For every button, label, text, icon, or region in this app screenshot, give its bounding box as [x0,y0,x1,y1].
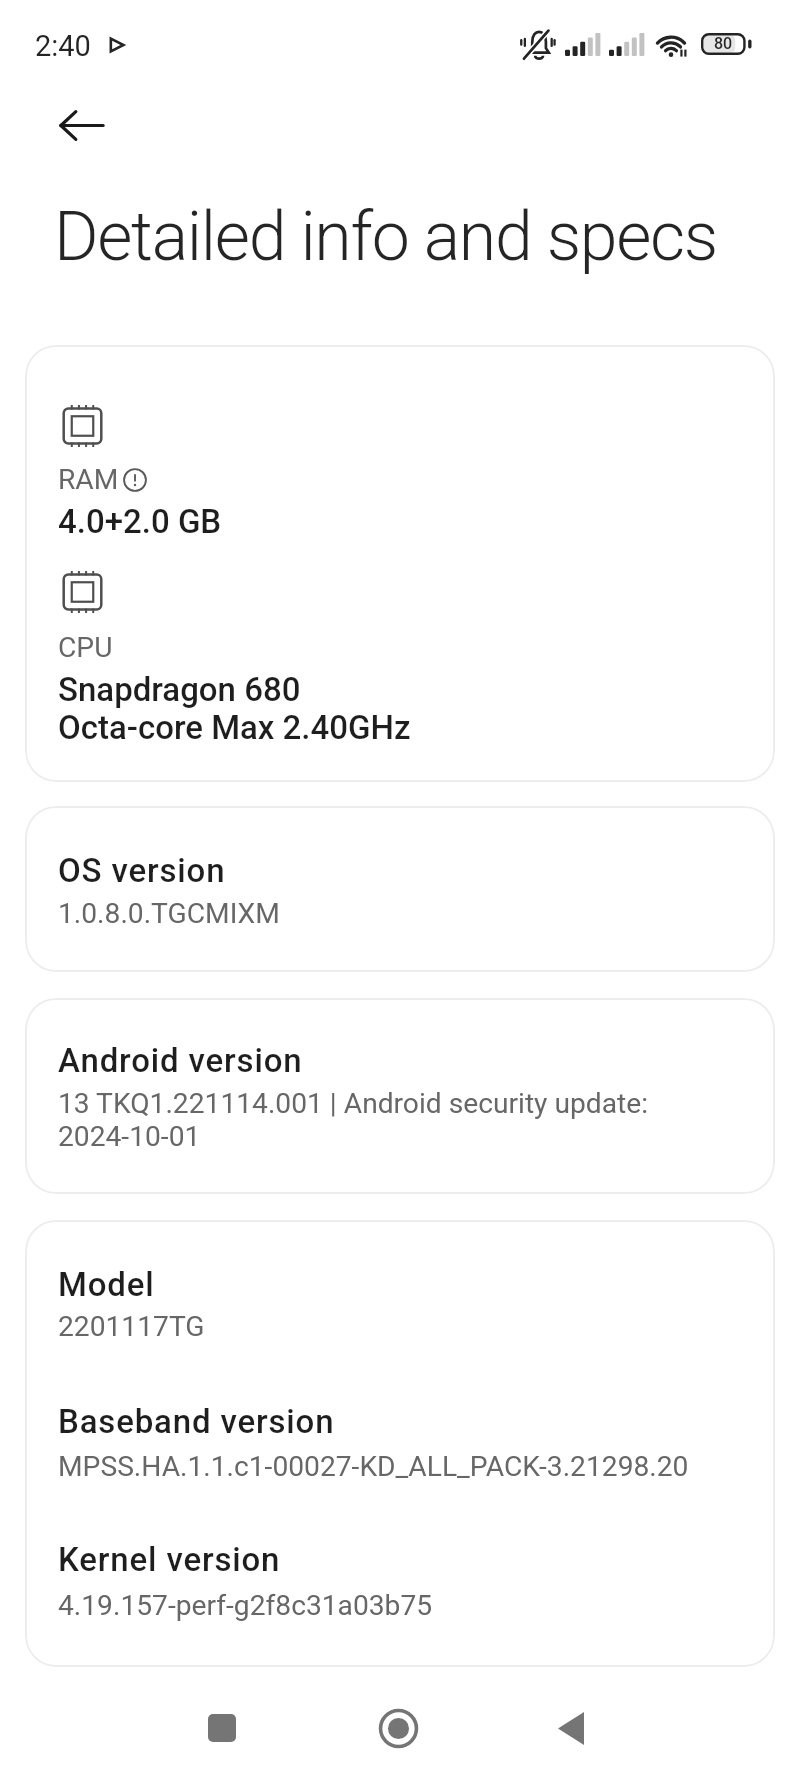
staticText: Android version [58,1042,303,1080]
staticText: Kernel version [58,1541,281,1579]
staticText: 4.0+2.0 GB [58,503,222,541]
staticText: Baseband version [58,1403,335,1441]
button[interactable]: OS version [25,806,775,972]
button[interactable]: Back [52,98,112,152]
button[interactable]: Back [516,1683,626,1773]
staticText: 2201117TG [58,1310,205,1343]
button[interactable]: RAM [25,345,775,782]
button[interactable]: Home [343,1683,453,1773]
staticText: CPU [58,631,113,664]
staticText: 13 TKQ1.221114.001 | Android security up… [58,1087,649,1153]
staticText: 4.19.157-perf-g2f8c31a03b75 [58,1589,433,1622]
button[interactable]: Android version [25,998,775,1194]
button[interactable]: Model [25,1220,775,1667]
staticText: MPSS.HA.1.1.c1-00027-KD_ALL_PACK-3.21298… [58,1450,689,1483]
staticText: OS version [58,852,226,890]
staticText: 2:40 [35,32,91,62]
staticText: 80 [714,36,733,53]
button[interactable]: Recent apps [167,1683,277,1773]
staticText: Model [58,1266,155,1304]
staticText: RAM [58,463,119,496]
staticText: 1.0.8.0.TGCMIXM [58,897,280,930]
staticText: Snapdragon 680 Octa-core Max 2.40GHz [58,671,411,747]
staticText: Detailed info and specs [54,198,717,276]
